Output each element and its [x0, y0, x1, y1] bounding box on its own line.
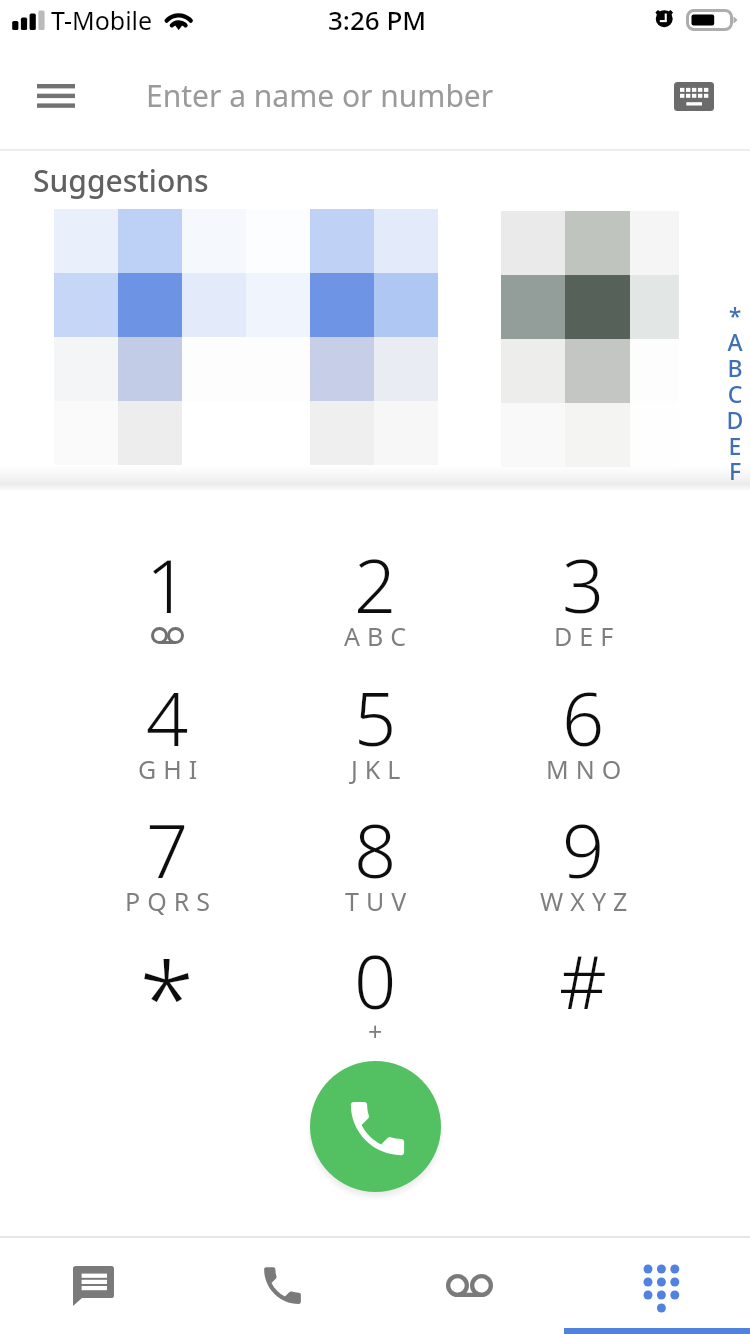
- staticText: 7: [146, 799, 189, 900]
- staticText: MNO: [546, 752, 629, 786]
- button[interactable]: 1: [63, 525, 271, 647]
- button[interactable]: Keyboard: [652, 64, 736, 128]
- button[interactable]: Dialpad: [564, 1236, 750, 1334]
- staticText: 1: [146, 534, 189, 635]
- button[interactable]: Menu: [13, 62, 99, 130]
- button[interactable]: *: [63, 921, 271, 1043]
- staticText: 4: [146, 667, 189, 768]
- staticText: WXYZ: [540, 884, 635, 918]
- button[interactable]: B: [723, 352, 747, 383]
- button[interactable]: 6: [479, 658, 687, 780]
- button[interactable]: F: [723, 455, 747, 486]
- staticText: 8: [354, 799, 397, 900]
- staticText: Enter a name or number: [146, 75, 494, 116]
- button[interactable]: *: [723, 300, 747, 331]
- button[interactable]: Voicemail: [376, 1236, 564, 1334]
- button[interactable]: 9: [479, 790, 687, 912]
- button[interactable]: Messages: [0, 1236, 188, 1334]
- staticText: 2: [354, 534, 397, 635]
- staticText: T-Mobile: [51, 3, 153, 37]
- staticText: GHI: [138, 752, 205, 786]
- staticText: ABC: [344, 619, 414, 653]
- staticText: 9: [562, 799, 605, 900]
- button[interactable]: 2: [271, 525, 479, 647]
- button[interactable]: Call: [310, 1061, 441, 1192]
- button[interactable]: 7: [63, 790, 271, 912]
- button[interactable]: 8: [271, 790, 479, 912]
- staticText: 3: [562, 534, 605, 635]
- button[interactable]: C: [723, 378, 747, 409]
- staticText: 3:26 PM: [328, 2, 427, 37]
- button[interactable]: A: [723, 326, 747, 357]
- staticText: #: [559, 930, 607, 1031]
- staticText: JKL: [351, 752, 408, 786]
- staticText: +: [368, 1014, 383, 1048]
- button[interactable]: Calls: [188, 1236, 376, 1334]
- staticText: TUV: [345, 884, 414, 918]
- button[interactable]: E: [723, 430, 747, 461]
- button[interactable]: 4: [63, 658, 271, 780]
- button[interactable]: #: [479, 921, 687, 1043]
- button[interactable]: D: [723, 404, 747, 435]
- button[interactable]: 0: [271, 921, 479, 1043]
- staticText: Suggestions: [33, 160, 209, 201]
- button[interactable]: 3: [479, 525, 687, 647]
- button[interactable]: 5: [271, 658, 479, 780]
- staticText: DEF: [554, 619, 621, 653]
- staticText: PQRS: [125, 884, 217, 918]
- staticText: 5: [354, 667, 397, 768]
- staticText: 6: [562, 667, 605, 768]
- staticText: 0: [354, 930, 397, 1031]
- staticText: *: [139, 928, 195, 1050]
